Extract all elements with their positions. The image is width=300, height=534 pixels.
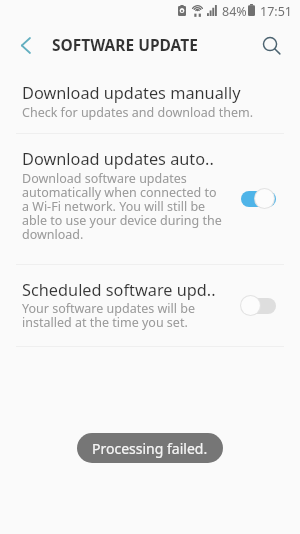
staticText: Download software updates automatically … [22,170,223,242]
button[interactable] [0,265,300,346]
button[interactable]: Turn on [240,295,276,316]
staticText: Your software updates will be installed … [22,300,223,330]
button[interactable]: Turn off [240,188,276,209]
button[interactable]: Search [252,26,292,66]
staticText: Scheduled software upd.. [22,279,216,301]
staticText: Download updates auto.. [22,148,214,170]
staticText: Download updates manually [22,82,241,104]
button[interactable]: Navigate up [6,26,44,64]
staticText: 17:51 [260,3,292,20]
staticText: Processing failed. [92,439,208,458]
staticText: 84% [222,3,247,20]
staticText: SOFTWARE UPDATE [52,34,198,55]
button[interactable]: Processing failed. [77,433,223,463]
button[interactable] [0,134,300,264]
staticText: Check for updates and download them. [22,104,254,121]
button[interactable] [0,73,300,133]
